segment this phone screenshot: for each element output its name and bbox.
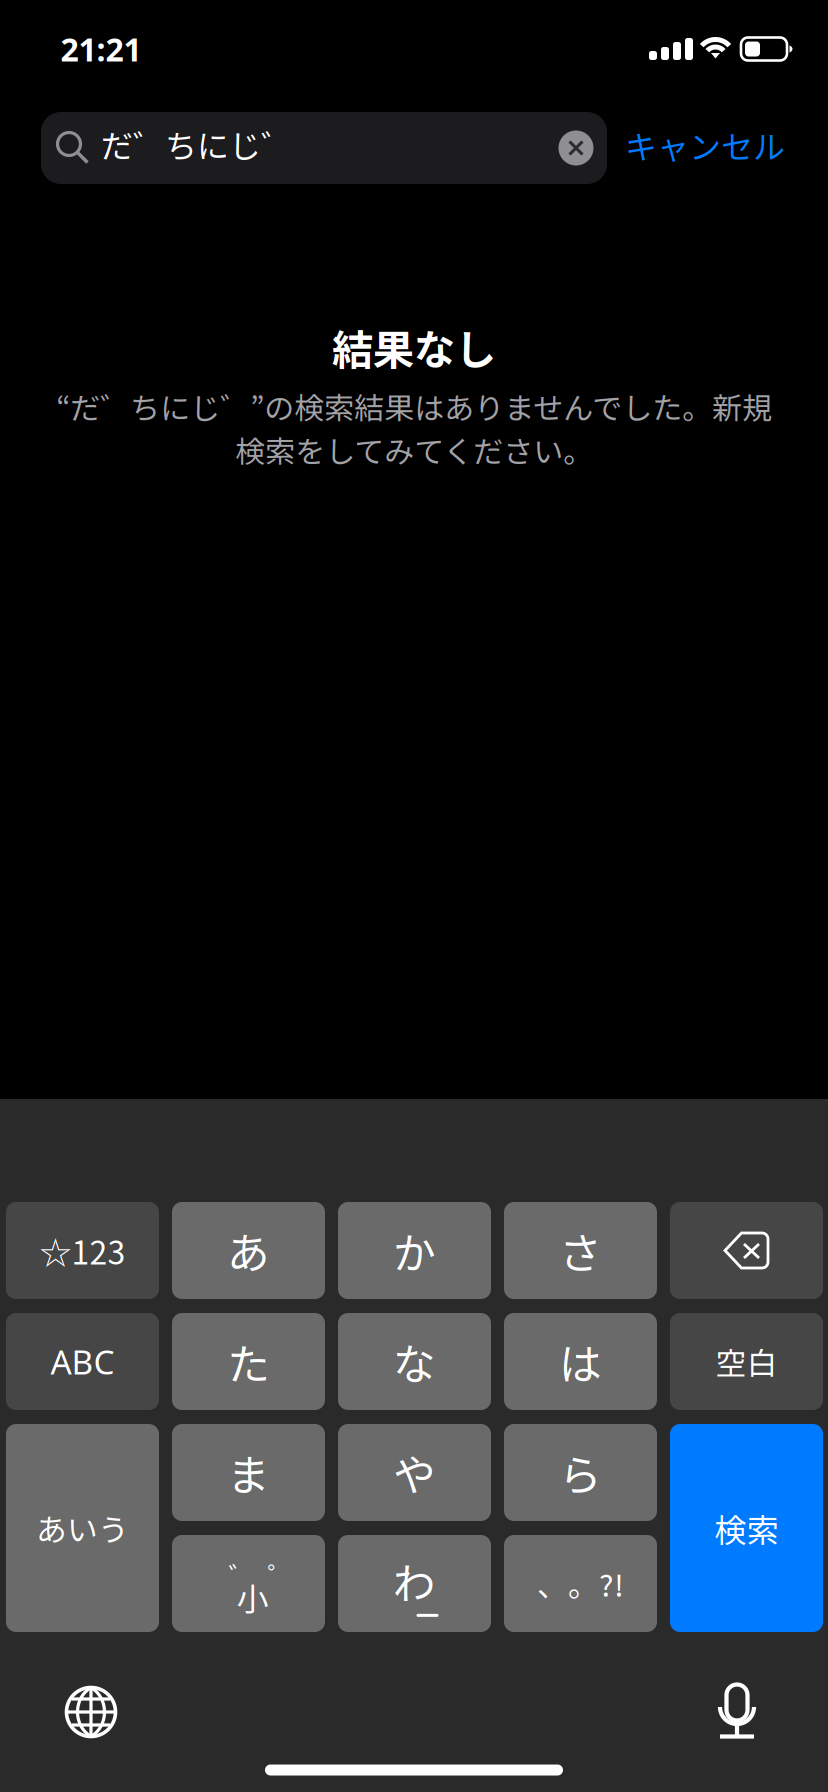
button[interactable]: キャンセル <box>607 109 795 187</box>
button[interactable]: ☆123 <box>6 1202 159 1299</box>
staticText: だ゛ちにじ゛ <box>101 121 293 167</box>
staticText: ゛ <box>228 1555 255 1594</box>
button[interactable]: 検索 <box>670 1424 823 1632</box>
button[interactable]: Dakuten, small kana <box>172 1535 325 1632</box>
staticText: は <box>559 1331 602 1392</box>
staticText: や <box>393 1442 436 1503</box>
staticText: 結果なし <box>332 317 496 377</box>
button[interactable]: ABC <box>6 1313 159 1410</box>
button[interactable]: さ <box>504 1202 657 1299</box>
staticText: 、。?! <box>537 1561 624 1606</box>
button[interactable]: 空白 <box>670 1313 823 1410</box>
staticText: 小 <box>236 1573 268 1620</box>
button[interactable]: な <box>338 1313 491 1410</box>
button[interactable]: た <box>172 1313 325 1410</box>
button[interactable]: か <box>338 1202 491 1299</box>
button[interactable]: あいう <box>6 1424 159 1632</box>
staticText: わ <box>393 1550 436 1612</box>
staticText: ゜ <box>267 1555 294 1594</box>
button[interactable]: Delete <box>670 1202 823 1299</box>
button[interactable]: wa <box>338 1535 491 1632</box>
button[interactable]: 、。?! <box>504 1535 657 1632</box>
staticText: 検索 <box>714 1505 778 1551</box>
staticText: あいう <box>36 1506 129 1550</box>
button[interactable]: Dictation <box>718 1681 756 1739</box>
button[interactable]: ま <box>172 1424 325 1521</box>
staticText: な <box>393 1331 436 1392</box>
button[interactable]: Clear text <box>552 124 600 172</box>
staticText: さ <box>559 1220 602 1281</box>
button[interactable]: や <box>338 1424 491 1521</box>
staticText: ☆123 <box>39 1227 125 1274</box>
staticText: か <box>393 1220 436 1281</box>
staticText: ABC <box>50 1339 114 1384</box>
button[interactable]: Next keyboard <box>64 1685 118 1739</box>
staticText: 空白 <box>715 1339 777 1384</box>
button[interactable]: は <box>504 1313 657 1410</box>
staticText: あ <box>227 1220 270 1281</box>
staticText: “だ゛ちにじ゛”の検索結果はありませんでした。新規検索をしてみてください。 <box>56 385 772 471</box>
staticText: た <box>227 1331 270 1392</box>
button[interactable]: あ <box>172 1202 325 1299</box>
staticText: ら <box>559 1442 602 1503</box>
staticText: 21:21 <box>60 28 141 70</box>
button[interactable]: ら <box>504 1424 657 1521</box>
staticText: ま <box>227 1442 270 1503</box>
staticText: キャンセル <box>625 122 785 168</box>
